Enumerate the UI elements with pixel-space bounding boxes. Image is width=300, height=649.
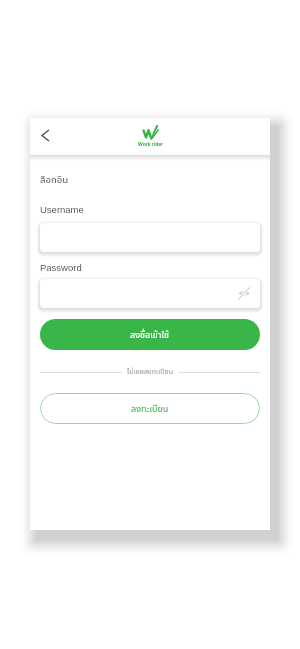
staticText: ลงชื่อเข้าใช้ [130, 328, 170, 342]
staticText: Password [40, 262, 82, 273]
button[interactable]: ลงชื่อเข้าใช้ [40, 319, 260, 350]
button[interactable]: Back [30, 121, 60, 153]
staticText: Work rider [138, 141, 163, 147]
button[interactable]: ลงทะเบียน [40, 393, 260, 424]
staticText: ลงทะเบียน [131, 402, 169, 416]
staticText: ไม่เคยลงทะเบียน [127, 367, 173, 378]
staticText: Username [40, 204, 84, 215]
button[interactable]: Show password [235, 284, 253, 302]
staticText: ล็อกอิน [40, 173, 69, 188]
